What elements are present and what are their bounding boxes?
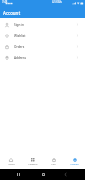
staticText: Account	[70, 163, 79, 166]
staticText: Category	[28, 163, 38, 166]
button[interactable]: Orders	[0, 41, 85, 52]
staticText: Cart	[51, 163, 56, 166]
staticText: Orders	[14, 45, 25, 49]
button[interactable]: Account	[0, 7, 85, 18]
button[interactable]: Home	[29, 169, 57, 180]
button[interactable]: Sign in	[0, 19, 85, 30]
staticText: 4.5 KB/s	[52, 0, 62, 4]
button[interactable]: Back	[0, 169, 29, 180]
button[interactable]: Category	[22, 158, 43, 166]
button[interactable]: Account	[64, 158, 85, 166]
staticText: Home	[8, 163, 15, 166]
staticText: Sign in	[14, 23, 24, 27]
staticText: Address	[14, 56, 26, 60]
staticText: 7:48	[2, 0, 8, 4]
button[interactable]: Recent apps	[57, 169, 85, 180]
button[interactable]: Home	[0, 158, 22, 166]
button[interactable]: Address	[0, 52, 85, 63]
button[interactable]: Wishlist	[0, 30, 85, 41]
staticText: Wishlist	[14, 34, 26, 38]
staticText: Account	[3, 10, 21, 16]
button[interactable]: Cart	[43, 158, 64, 166]
